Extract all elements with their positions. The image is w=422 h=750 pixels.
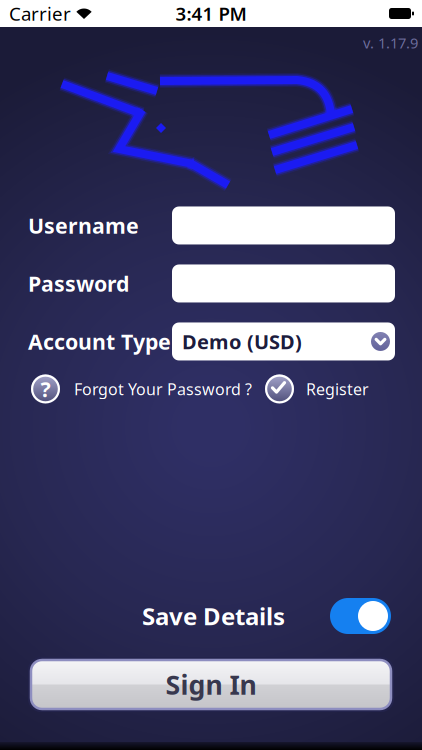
staticText: Forgot Your Password ? — [74, 378, 252, 400]
button[interactable]: Username — [172, 206, 395, 244]
button[interactable]: Account Type: Demo (USD) — [172, 322, 395, 360]
button[interactable]: Password — [172, 264, 395, 302]
button[interactable]: Sign In — [28, 657, 394, 712]
staticText: v. 1.17.9 — [363, 33, 418, 52]
staticText: Password — [28, 269, 129, 298]
staticText: Username — [28, 211, 139, 240]
button[interactable]: Register — [265, 374, 369, 403]
staticText: Save Details — [142, 600, 285, 632]
staticText: 3:41 PM — [175, 1, 246, 26]
staticText: Demo (USD) — [182, 328, 302, 355]
button[interactable]: ? — [31, 374, 252, 403]
button[interactable]: Save Details — [330, 598, 391, 634]
staticText: Carrier — [9, 1, 71, 26]
staticText: Account Type — [28, 327, 171, 356]
staticText: ? — [40, 375, 50, 403]
staticText: Register — [306, 378, 369, 400]
staticText: Sign In — [165, 667, 256, 702]
